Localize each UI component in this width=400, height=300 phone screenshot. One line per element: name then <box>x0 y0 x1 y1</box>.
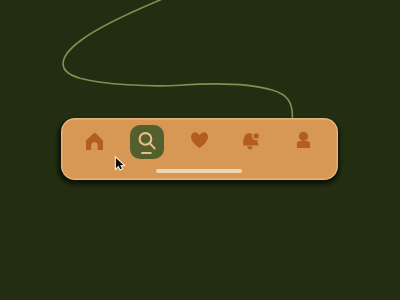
button[interactable]: Profile <box>283 120 323 160</box>
button[interactable]: Notifications <box>231 121 271 161</box>
button[interactable]: Favorites <box>179 120 219 160</box>
button[interactable]: Search <box>130 125 164 159</box>
button[interactable]: Home <box>74 121 114 161</box>
